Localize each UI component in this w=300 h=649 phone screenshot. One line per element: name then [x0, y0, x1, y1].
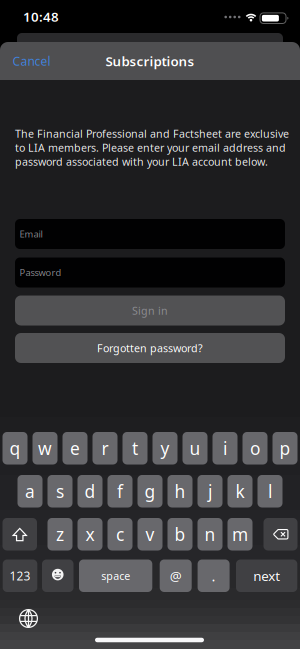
button[interactable]: f [107, 475, 132, 507]
staticText: . [212, 566, 216, 585]
button[interactable]: u [182, 432, 207, 464]
staticText: Cancel [12, 53, 50, 69]
button[interactable]: n [197, 518, 222, 550]
button[interactable]: m [227, 518, 252, 550]
button[interactable]: p [272, 432, 297, 464]
staticText: Subscriptions [105, 52, 194, 70]
staticText: password associated with your LIA accoun… [15, 154, 268, 169]
button[interactable]: c [107, 518, 132, 550]
staticText: p [279, 437, 290, 460]
staticText: u [189, 437, 200, 460]
staticText: f [117, 480, 123, 503]
staticText: Password [19, 266, 61, 279]
staticText: a [25, 480, 35, 503]
staticText: space [101, 569, 130, 583]
staticText: v [145, 523, 154, 546]
button[interactable]: s [47, 475, 72, 507]
button[interactable]: Sign in [15, 295, 285, 325]
staticText: e [70, 437, 80, 460]
button[interactable]: Forgotten password? [15, 333, 285, 363]
staticText: m [232, 523, 248, 546]
staticText: r [101, 437, 108, 460]
staticText: Forgotten password? [97, 341, 203, 355]
button[interactable]: space [79, 559, 152, 592]
staticText: b [174, 523, 185, 546]
staticText: c [116, 523, 124, 546]
staticText: The Financial Professional and Factsheet… [15, 126, 289, 141]
button[interactable]: g [137, 475, 162, 507]
staticText: 10:48 [23, 8, 59, 25]
button[interactable]: x [77, 518, 102, 550]
button[interactable]: h [167, 475, 192, 507]
button[interactable]: b [167, 518, 192, 550]
staticText: n [204, 523, 215, 546]
button[interactable]: next [236, 559, 297, 592]
button[interactable]: z [47, 518, 72, 550]
staticText: Sign in [132, 303, 168, 318]
button[interactable]: l [257, 475, 282, 507]
staticText: h [174, 480, 185, 503]
button[interactable]: k [227, 475, 252, 507]
button[interactable]: d [77, 475, 102, 507]
button[interactable]: a [17, 475, 42, 507]
button[interactable]: Shift [2, 518, 37, 550]
staticText: @ [170, 567, 182, 585]
staticText: 123 [9, 568, 30, 584]
button[interactable]: Cancel [12, 46, 50, 76]
button[interactable]: v [137, 518, 162, 550]
staticText: y [160, 437, 169, 460]
staticText: o [250, 437, 260, 460]
staticText: i [223, 437, 227, 460]
button[interactable]: o [242, 432, 267, 464]
button[interactable]: Email [15, 219, 285, 249]
button[interactable]: j [197, 475, 222, 507]
button[interactable]: i [212, 432, 237, 464]
staticText: k [235, 480, 244, 503]
staticText: Email [19, 228, 42, 240]
staticText: g [144, 480, 155, 503]
button[interactable]: . [198, 559, 230, 592]
button[interactable]: Emoji [42, 559, 73, 592]
button[interactable]: 123 [3, 559, 37, 592]
staticText: t [132, 437, 138, 460]
button[interactable]: w [32, 432, 57, 464]
button[interactable]: r [92, 432, 117, 464]
staticText: d [84, 480, 95, 503]
staticText: s [56, 480, 64, 503]
staticText: j [208, 480, 212, 503]
staticText: z [56, 523, 64, 546]
button[interactable]: t [122, 432, 147, 464]
staticText: q [9, 437, 20, 460]
button[interactable]: Next keyboard [19, 609, 38, 628]
button[interactable]: @ [160, 559, 192, 592]
staticText: next [253, 567, 280, 585]
button[interactable]: Delete [263, 518, 297, 550]
button[interactable]: y [152, 432, 177, 464]
staticText: x [85, 523, 94, 546]
button[interactable]: Password [15, 257, 285, 287]
button[interactable]: e [62, 432, 87, 464]
staticText: w [38, 437, 52, 460]
button[interactable]: q [2, 432, 27, 464]
staticText: l [268, 480, 272, 503]
staticText: to LIA members. Please enter your email … [15, 140, 286, 155]
